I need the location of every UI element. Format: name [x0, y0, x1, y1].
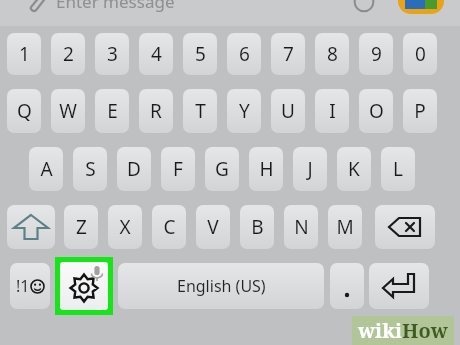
button[interactable]: 1	[7, 33, 41, 75]
button[interactable]: R	[139, 89, 173, 133]
button[interactable]: A	[29, 147, 63, 191]
button[interactable]: O	[359, 89, 393, 133]
staticText: C	[163, 214, 176, 240]
button[interactable]: T	[183, 89, 217, 133]
button[interactable]: 3	[95, 33, 129, 75]
staticText: V	[207, 214, 219, 240]
staticText: P	[414, 98, 426, 124]
staticText: I	[329, 98, 336, 124]
staticText: J	[307, 156, 313, 182]
staticText: 9	[371, 41, 382, 67]
button[interactable]: C	[152, 205, 186, 249]
button[interactable]: F	[161, 147, 195, 191]
staticText: L	[393, 156, 403, 182]
button[interactable]: P	[403, 89, 437, 133]
staticText: 0	[415, 41, 426, 67]
staticText: F	[173, 156, 183, 182]
staticText: E	[107, 98, 118, 124]
button[interactable]: 7	[271, 33, 305, 75]
staticText: D	[127, 156, 141, 182]
staticText: S	[85, 156, 96, 182]
staticText: W	[59, 98, 77, 124]
button[interactable]: L	[381, 147, 415, 191]
staticText: 2	[63, 41, 74, 67]
staticText: Z	[76, 214, 87, 240]
staticText: How	[402, 317, 448, 344]
staticText: 3	[107, 41, 118, 67]
button[interactable]: H	[249, 147, 283, 191]
staticText: A	[40, 156, 53, 182]
staticText: G	[215, 156, 229, 182]
button[interactable]: Y	[227, 89, 261, 133]
button[interactable]: 8	[315, 33, 349, 75]
button[interactable]: B	[240, 205, 274, 249]
button[interactable]: 0	[403, 33, 437, 75]
button[interactable]	[330, 263, 364, 309]
staticText: O	[369, 98, 384, 124]
button[interactable]: U	[271, 89, 305, 133]
staticText: Q	[17, 98, 32, 124]
button[interactable]: Keyboard settings	[60, 262, 108, 310]
staticText: 1	[19, 41, 30, 67]
button[interactable]: D	[117, 147, 151, 191]
staticText: X	[119, 214, 131, 240]
staticText: H	[259, 156, 274, 182]
button[interactable]: E	[95, 89, 129, 133]
staticText: Y	[239, 98, 250, 124]
button[interactable]: X	[108, 205, 142, 249]
button[interactable]: J	[293, 147, 327, 191]
button[interactable]: V	[196, 205, 230, 249]
staticText: B	[251, 214, 264, 240]
button[interactable]: !1	[10, 263, 50, 309]
button[interactable]: Enter	[369, 263, 429, 309]
button[interactable]: 9	[359, 33, 393, 75]
staticText: English (US)	[177, 275, 266, 297]
button[interactable]: 5	[183, 33, 217, 75]
staticText: R	[150, 98, 162, 124]
button[interactable]: I	[315, 89, 349, 133]
button[interactable]: Q	[7, 89, 41, 133]
staticText: U	[281, 98, 295, 124]
staticText: T	[195, 98, 206, 124]
staticText: N	[294, 214, 309, 240]
button[interactable]: M	[328, 205, 362, 249]
staticText: 5	[195, 41, 206, 67]
button[interactable]: Attach	[24, 0, 48, 14]
button[interactable]: Backspace	[375, 205, 435, 249]
staticText: wiki	[358, 317, 402, 344]
staticText: M	[336, 214, 354, 240]
staticText: 7	[283, 41, 294, 67]
button[interactable]: K	[337, 147, 371, 191]
button[interactable]: S	[73, 147, 107, 191]
button[interactable]: 2	[51, 33, 85, 75]
staticText: 6	[239, 41, 250, 67]
button[interactable]: Shift	[7, 205, 55, 249]
staticText: Enter message	[56, 0, 175, 13]
button[interactable]: W	[51, 89, 85, 133]
button[interactable]: G	[205, 147, 239, 191]
button[interactable]: Z	[64, 205, 98, 249]
staticText: !1	[16, 275, 30, 297]
staticText: 4	[151, 41, 162, 67]
staticText: 8	[327, 41, 338, 67]
button[interactable]: N	[284, 205, 318, 249]
button[interactable]: Emoji	[350, 0, 378, 15]
staticText: K	[348, 156, 360, 182]
button[interactable]: 6	[227, 33, 261, 75]
button[interactable]: 4	[139, 33, 173, 75]
button[interactable]: English (US)	[118, 263, 324, 309]
button[interactable]: Send	[398, 0, 444, 14]
